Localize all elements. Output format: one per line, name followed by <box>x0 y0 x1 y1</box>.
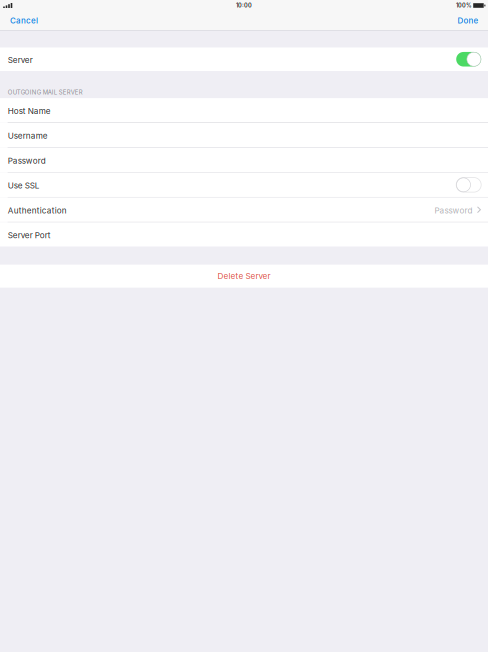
button[interactable]: Use SSL <box>0 173 488 197</box>
staticText: OUTGOING MAIL SERVER <box>8 89 83 96</box>
staticText: 10:00 <box>236 2 252 9</box>
button[interactable]: Username <box>0 123 488 147</box>
staticText: Password <box>435 206 473 215</box>
staticText: 100% <box>456 2 472 9</box>
staticText: Delete Server <box>217 271 270 281</box>
button[interactable]: Delete Server <box>0 265 488 288</box>
button[interactable]: Cancel <box>0 11 48 30</box>
button[interactable]: Host Name <box>0 98 488 122</box>
staticText: Host Name <box>8 106 51 116</box>
button[interactable]: Done <box>448 11 488 30</box>
button[interactable]: Server Port <box>0 222 488 247</box>
staticText: Username <box>8 131 48 141</box>
staticText: Server <box>8 55 33 65</box>
staticText: Password <box>8 156 46 166</box>
staticText: Done <box>458 16 479 25</box>
button[interactable]: Password <box>0 148 488 172</box>
staticText: Use SSL <box>8 181 40 190</box>
staticText: Server Port <box>8 230 51 240</box>
button[interactable]: Server <box>0 47 488 71</box>
staticText: Cancel <box>10 16 38 25</box>
staticText: Authentication <box>8 206 67 215</box>
button[interactable]: Authentication <box>0 198 488 222</box>
